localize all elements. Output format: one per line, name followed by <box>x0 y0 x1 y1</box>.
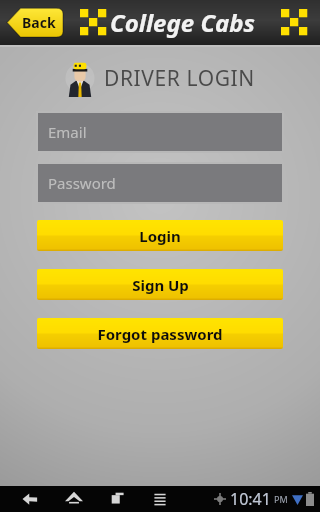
staticText: Login <box>139 226 181 246</box>
staticText: Password <box>48 173 116 193</box>
staticText: DRIVER LOGIN <box>104 64 255 93</box>
staticText: PM <box>274 493 288 505</box>
button[interactable]: Back <box>8 486 52 512</box>
staticText: Sign Up <box>132 275 189 295</box>
button[interactable]: Menu <box>138 486 182 512</box>
button[interactable]: Forgot password <box>37 318 283 349</box>
staticText: Email <box>48 122 87 142</box>
button[interactable]: Home <box>52 486 96 512</box>
staticText: 10:41 <box>230 488 271 510</box>
staticText: Forgot password <box>97 324 223 344</box>
button[interactable]: Back <box>7 7 63 38</box>
button[interactable]: Sign Up <box>37 269 283 300</box>
button[interactable]: Login <box>37 220 283 251</box>
button[interactable]: Recent apps <box>96 486 140 512</box>
staticText: College Cabs <box>110 6 255 39</box>
staticText: Back <box>22 13 56 32</box>
button[interactable]: Email <box>38 113 282 151</box>
button[interactable]: Password <box>38 164 282 202</box>
